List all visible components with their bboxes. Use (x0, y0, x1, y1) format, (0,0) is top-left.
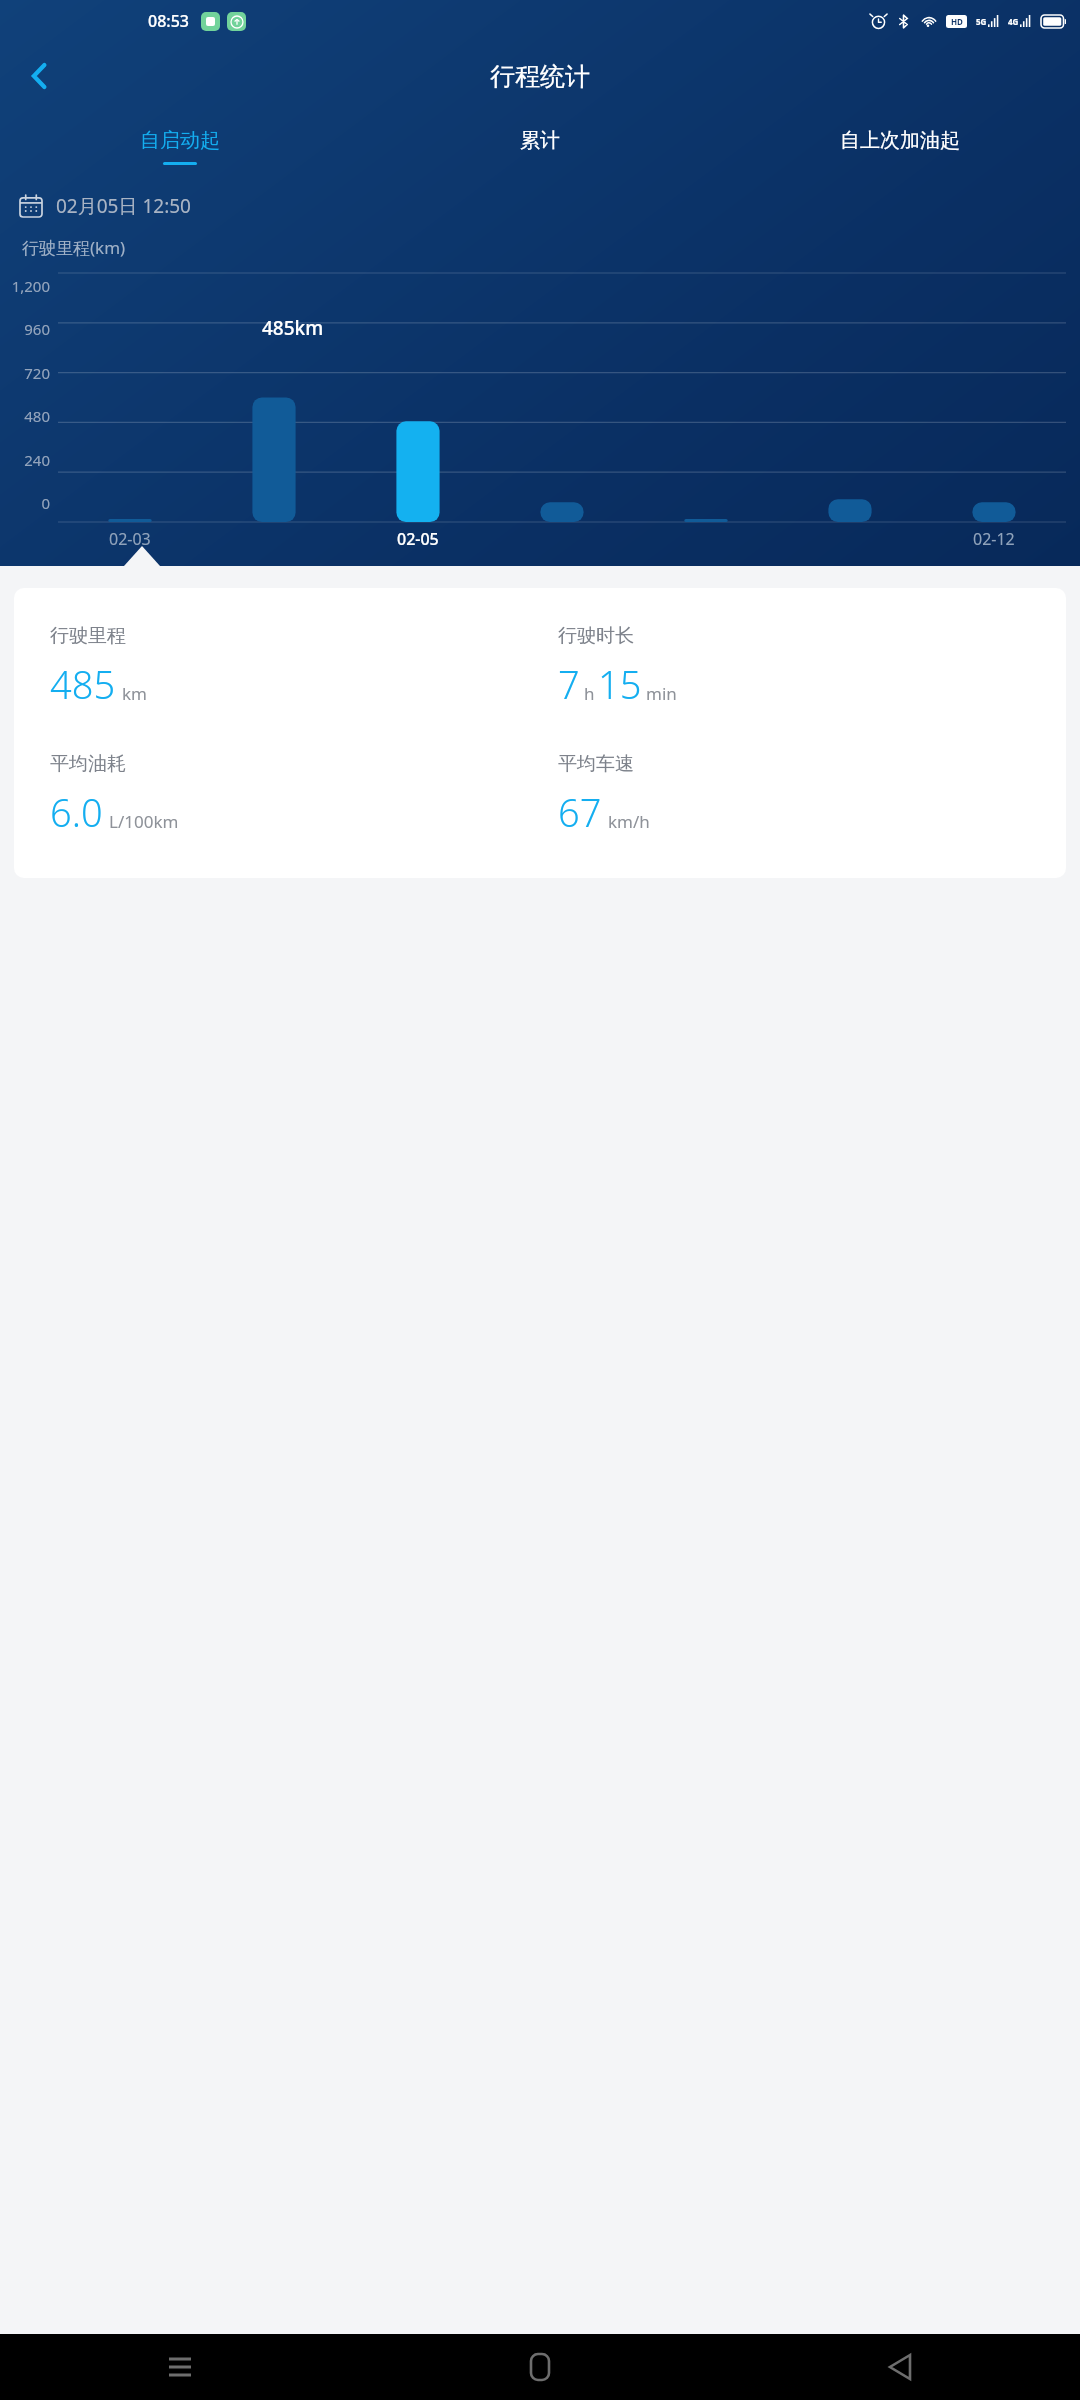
staticText: 08:53 (148, 10, 189, 32)
staticText: 自启动起 (140, 128, 220, 153)
staticText: 累计 (520, 128, 560, 153)
staticText: km (122, 682, 147, 705)
staticText: 02-03 (109, 528, 151, 550)
staticText: 15 (598, 658, 642, 710)
staticText: 行程统计 (490, 61, 590, 92)
staticText: 02-05 (397, 528, 439, 550)
staticText: 0 (0, 493, 50, 513)
staticText: 240 (0, 450, 50, 470)
staticText: 1,200 (0, 276, 50, 296)
staticText: 02月05日 12:50 (56, 193, 191, 219)
button[interactable]: Back (12, 48, 68, 104)
staticText: km/h (608, 810, 650, 833)
staticText: 4G (1008, 16, 1019, 27)
staticText: h (584, 682, 595, 705)
button[interactable]: Home (360, 2334, 720, 2400)
button[interactable]: 自启动起 (0, 110, 360, 182)
staticText: 行驶里程 (50, 624, 126, 648)
staticText: 行驶里程(km) (22, 236, 126, 259)
staticText: 480 (0, 406, 50, 426)
button[interactable]: Back (720, 2334, 1080, 2400)
button[interactable]: 行驶里程 (14, 588, 1066, 878)
staticText: 67 (558, 786, 602, 838)
staticText: 5G (976, 16, 987, 27)
staticText: 行驶时长 (558, 624, 634, 648)
staticText: 平均油耗 (50, 752, 126, 776)
staticText: 485km (262, 315, 324, 341)
staticText: 960 (0, 319, 50, 339)
staticText: 485 (50, 658, 116, 710)
staticText: 02-12 (973, 528, 1015, 550)
staticText: 6.0 (50, 786, 103, 838)
staticText: 720 (0, 363, 50, 383)
staticText: 7 (558, 658, 580, 710)
button[interactable]: 自上次加油起 (720, 110, 1080, 182)
staticText: 自上次加油起 (840, 128, 960, 153)
staticText: min (646, 682, 677, 705)
button[interactable]: Recents (0, 2334, 360, 2400)
staticText: 平均车速 (558, 752, 634, 776)
staticText: L/100km (109, 810, 179, 833)
staticText: HD (951, 16, 963, 27)
button[interactable]: 累计 (360, 110, 720, 182)
